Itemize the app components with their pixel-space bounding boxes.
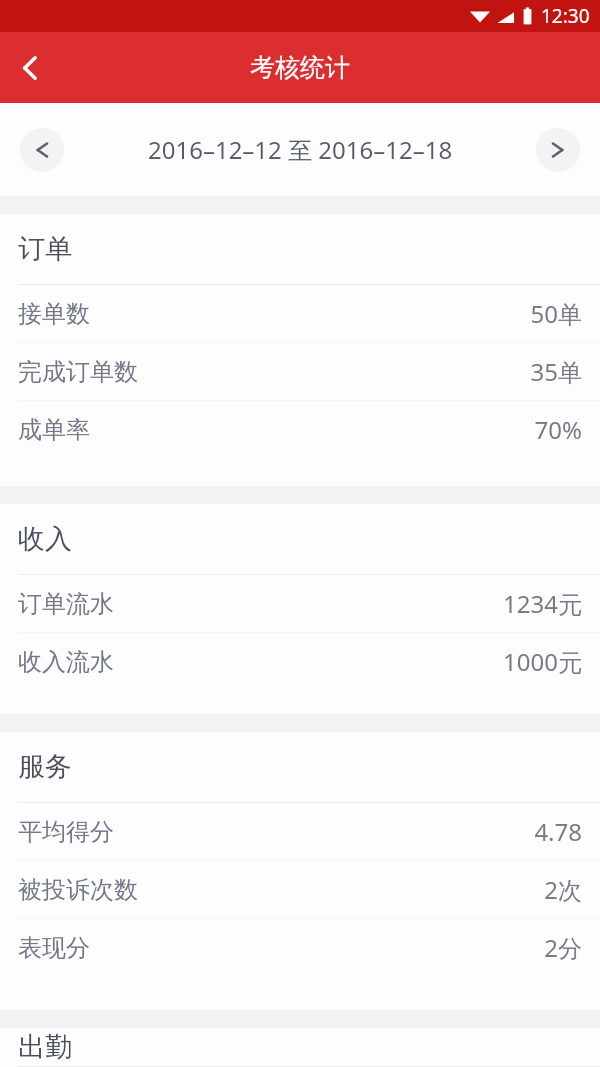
staticText: 4.78	[534, 815, 582, 848]
button[interactable]: 订单流水	[0, 575, 600, 633]
button[interactable]: Next week	[536, 128, 580, 172]
button[interactable]: 收入流水	[0, 633, 600, 691]
staticText: 35单	[530, 355, 582, 388]
staticText: 接单数	[18, 299, 90, 329]
staticText: 收入流水	[18, 647, 114, 677]
button[interactable]: 表现分	[0, 919, 600, 977]
staticText: 订单	[18, 232, 72, 266]
staticText: 2016–12–12 至 2016–12–18	[148, 133, 453, 166]
staticText: 收入	[18, 522, 72, 556]
staticText: 1000元	[503, 645, 582, 678]
staticText: 服务	[18, 750, 72, 784]
staticText: 完成订单数	[18, 357, 138, 387]
staticText: 2次	[544, 873, 582, 906]
staticText: 70%	[534, 413, 582, 446]
staticText: 2分	[544, 931, 582, 964]
staticText: 12:30	[541, 3, 590, 29]
button[interactable]: Back	[0, 32, 64, 103]
button[interactable]: 接单数	[0, 285, 600, 343]
staticText: 表现分	[18, 933, 90, 963]
staticText: 50单	[530, 297, 582, 330]
staticText: 订单流水	[18, 589, 114, 619]
staticText: 成单率	[18, 415, 90, 445]
button[interactable]: 完成订单数	[0, 343, 600, 401]
staticText: 1234元	[503, 587, 582, 620]
staticText: 被投诉次数	[18, 875, 138, 905]
staticText: 考核统计	[250, 52, 350, 83]
button[interactable]: 成单率	[0, 401, 600, 459]
button[interactable]: 被投诉次数	[0, 861, 600, 919]
button[interactable]: 平均得分	[0, 803, 600, 861]
button[interactable]: Previous week	[20, 128, 64, 172]
staticText: 出勤	[18, 1030, 72, 1064]
staticText: 平均得分	[18, 817, 114, 847]
